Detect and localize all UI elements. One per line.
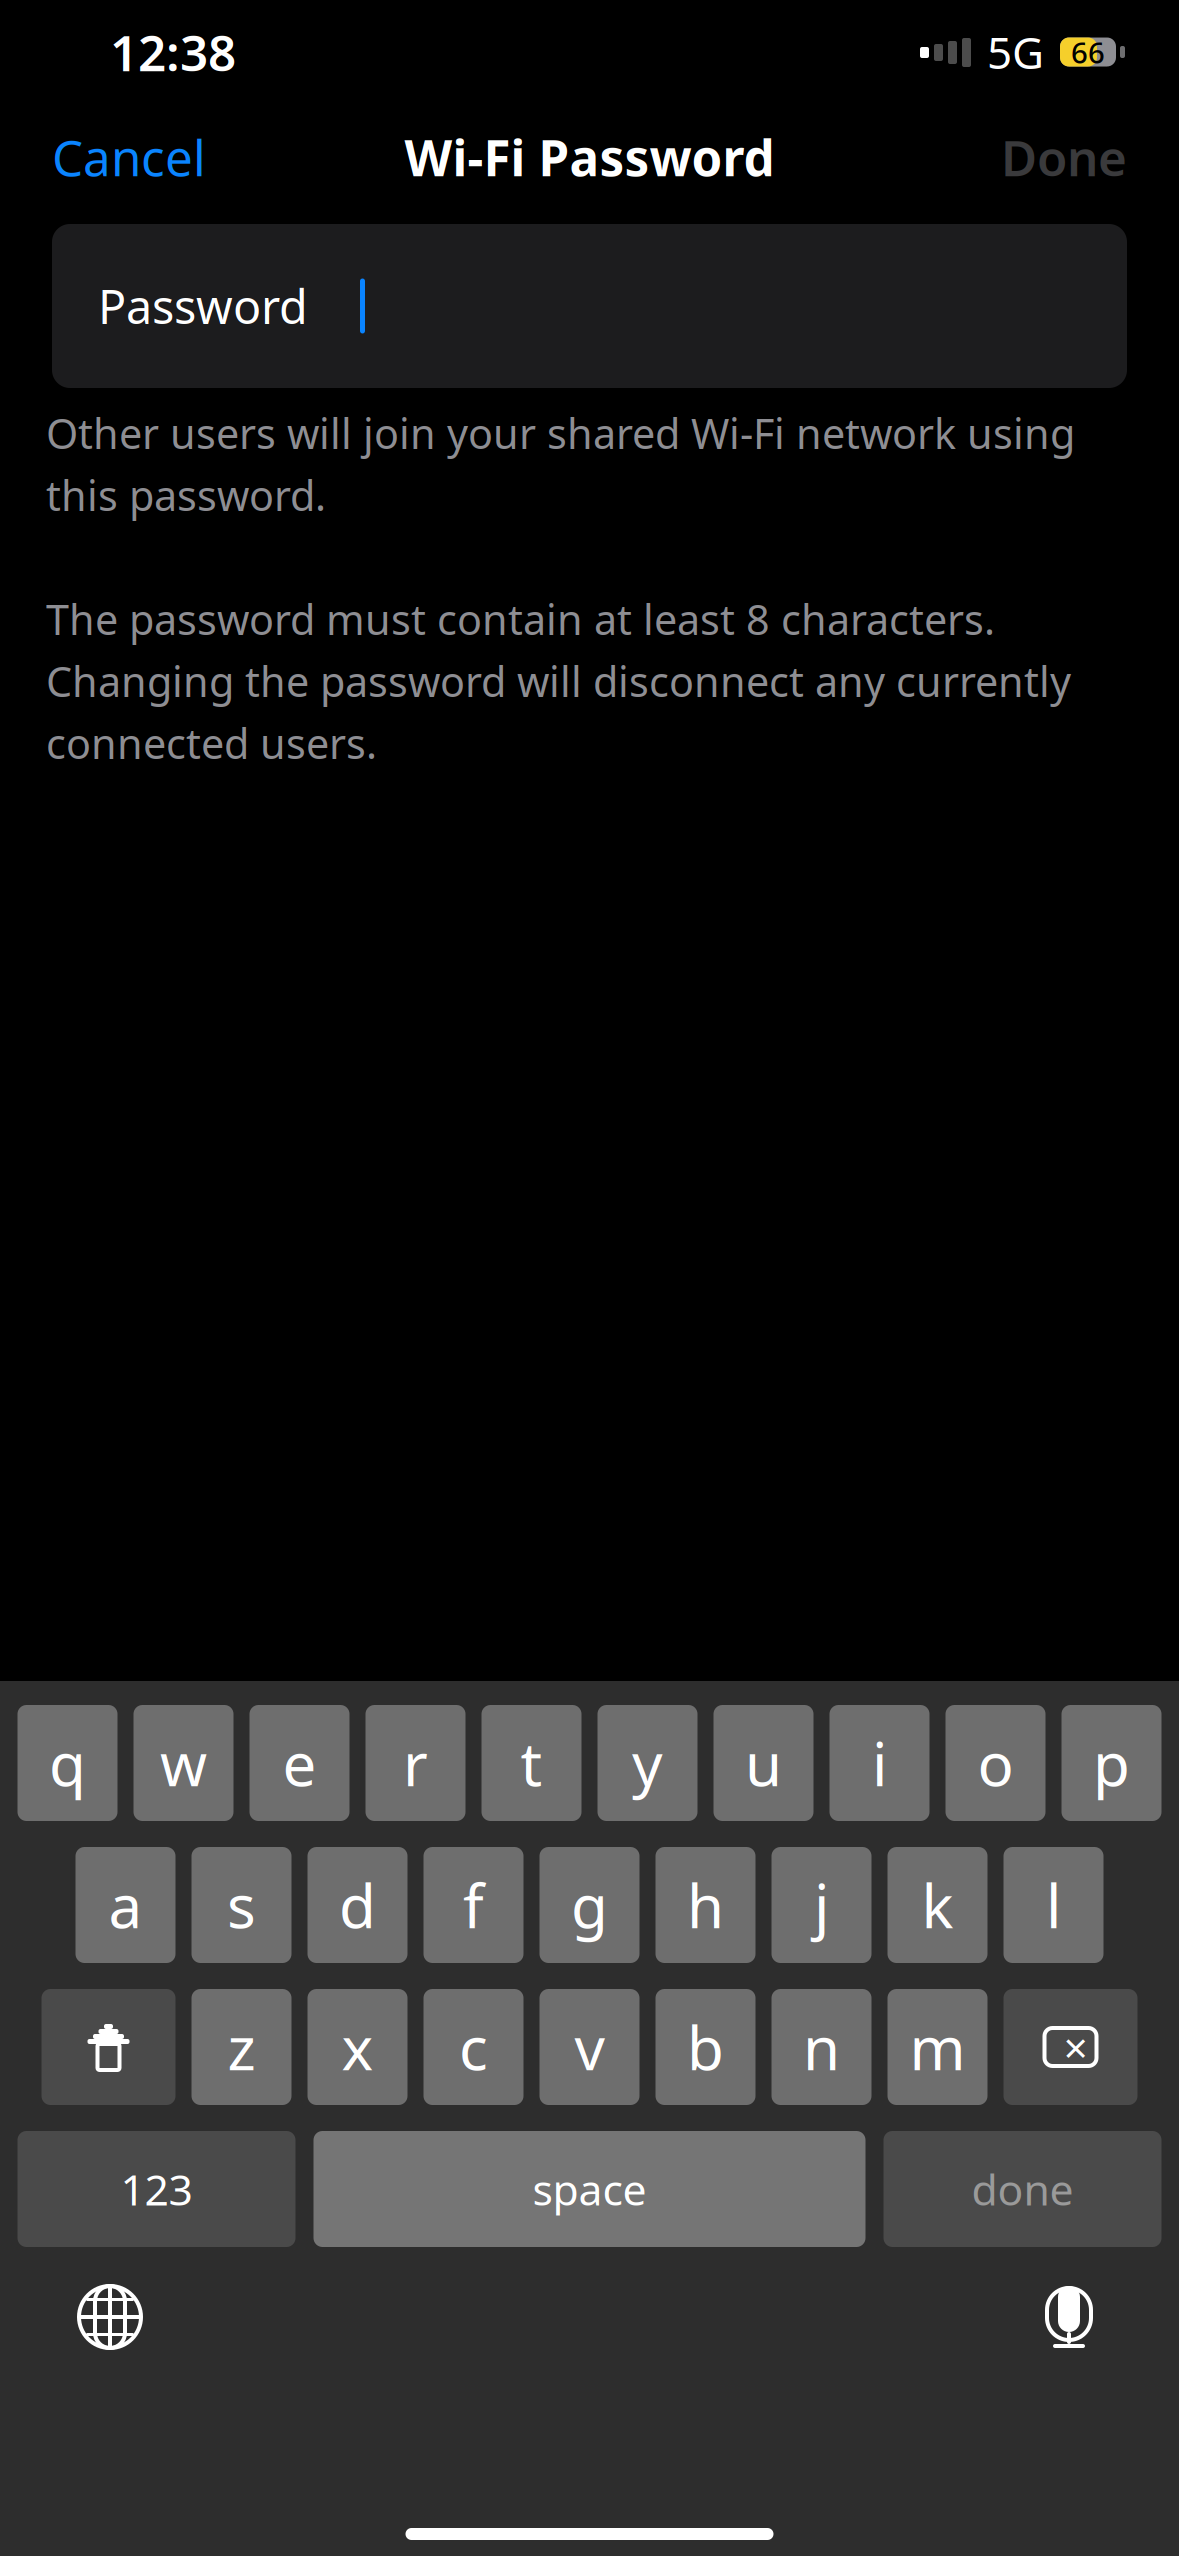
button[interactable]: j (771, 1847, 871, 1963)
button[interactable]: m (887, 1989, 987, 2105)
staticText: g (571, 1865, 608, 1945)
button[interactable]: done (883, 2131, 1161, 2247)
staticText: i (872, 1723, 887, 1803)
button[interactable]: n (771, 1989, 871, 2105)
staticText: l (1046, 1865, 1061, 1945)
button[interactable]: r (365, 1705, 465, 1821)
button[interactable]: c (423, 1989, 523, 2105)
staticText: f (463, 1865, 484, 1945)
staticText: n (803, 2007, 840, 2087)
staticText: 5G (987, 23, 1044, 81)
button[interactable]: a (75, 1847, 175, 1963)
button[interactable]: i (829, 1705, 929, 1821)
button[interactable]: t (481, 1705, 581, 1821)
staticText: m (909, 2007, 965, 2087)
button[interactable]: k (887, 1847, 987, 1963)
staticText: Done (1001, 124, 1127, 190)
button[interactable]: h (655, 1847, 755, 1963)
staticText: p (1093, 1723, 1130, 1803)
staticText: done (971, 2161, 1073, 2217)
button[interactable]: p (1061, 1705, 1161, 1821)
staticText: z (227, 2007, 255, 2087)
staticText: The password must contain at least 8 cha… (46, 592, 995, 646)
staticText: q (49, 1723, 86, 1803)
button[interactable]: d (307, 1847, 407, 1963)
button[interactable]: Delete (1003, 1989, 1137, 2105)
button[interactable]: Dictate (1021, 2269, 1117, 2365)
button[interactable]: w (133, 1705, 233, 1821)
button[interactable]: v (539, 1989, 639, 2105)
button[interactable]: 123 (17, 2131, 295, 2247)
button[interactable]: space (313, 2131, 865, 2247)
staticText: y (632, 1723, 663, 1803)
staticText: d (339, 1865, 376, 1945)
button[interactable]: g (539, 1847, 639, 1963)
staticText: s (227, 1865, 256, 1945)
staticText: u (745, 1723, 782, 1803)
staticText: connected users. (46, 716, 377, 770)
button[interactable]: x (307, 1989, 407, 2105)
staticText: 66 (1071, 32, 1105, 71)
staticText: j (814, 1865, 829, 1945)
button[interactable]: q (17, 1705, 117, 1821)
button[interactable]: Done (985, 106, 1143, 208)
button[interactable]: b (655, 1989, 755, 2105)
staticText: t (520, 1723, 542, 1803)
staticText: space (532, 2161, 646, 2217)
staticText: Wi-Fi Password (404, 124, 774, 190)
staticText: a (108, 1865, 142, 1945)
staticText: Cancel (52, 124, 206, 190)
staticText: this password. (46, 468, 326, 522)
button[interactable]: u (713, 1705, 813, 1821)
staticText: h (687, 1865, 724, 1945)
staticText: k (921, 1865, 953, 1945)
button[interactable]: o (945, 1705, 1045, 1821)
staticText: v (574, 2007, 604, 2087)
staticText: Changing the password will disconnect an… (46, 654, 1071, 708)
staticText: x (341, 2007, 373, 2087)
staticText: b (687, 2007, 724, 2087)
button[interactable]: Next keyboard (62, 2269, 158, 2365)
button[interactable]: y (597, 1705, 697, 1821)
button[interactable]: z (191, 1989, 291, 2105)
staticText: o (977, 1723, 1013, 1803)
staticText: Password (98, 275, 308, 337)
button[interactable]: Password (52, 224, 1127, 388)
staticText: c (459, 2007, 488, 2087)
button[interactable]: Cancel (36, 106, 222, 208)
button[interactable]: Shift (41, 1989, 175, 2105)
staticText: w (160, 1723, 207, 1803)
staticText: × (1063, 2019, 1087, 2075)
button[interactable]: s (191, 1847, 291, 1963)
button[interactable]: l (1003, 1847, 1103, 1963)
staticText: r (403, 1723, 428, 1803)
button[interactable]: f (423, 1847, 523, 1963)
staticText: 12:38 (110, 19, 236, 85)
button[interactable]: e (249, 1705, 349, 1821)
staticText: e (282, 1723, 316, 1803)
staticText: Other users will join your shared Wi-Fi … (46, 406, 1075, 460)
staticText: 123 (120, 2161, 192, 2217)
